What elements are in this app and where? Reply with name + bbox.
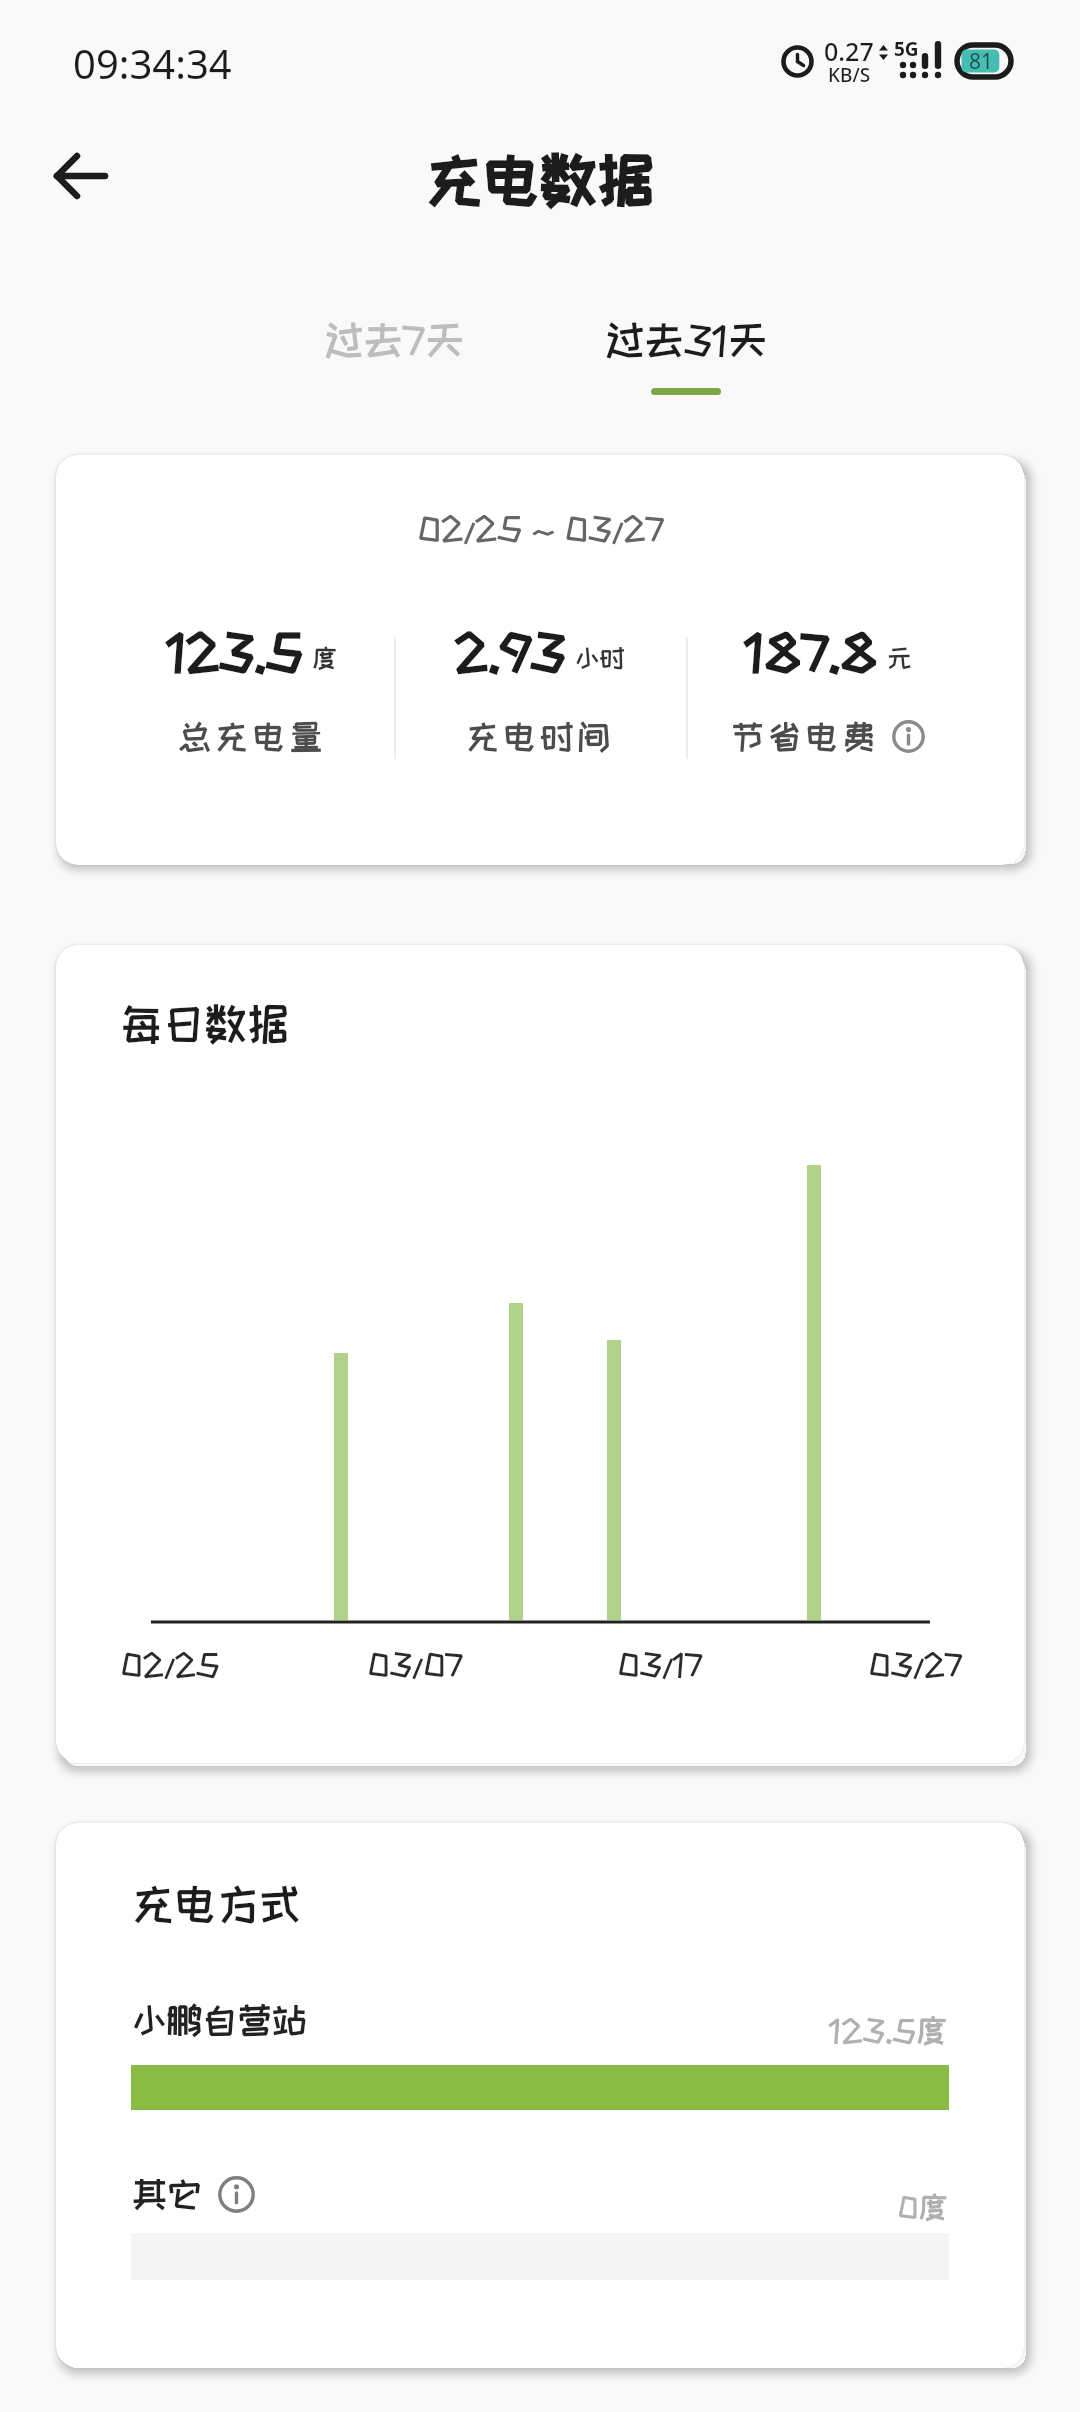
staticText: 其它	[132, 2175, 202, 2213]
staticText: 02/25	[120, 1647, 220, 1681]
staticText: 03/27	[868, 1647, 963, 1681]
staticText: 充电时间	[466, 718, 615, 754]
staticText: 总充电量	[178, 718, 327, 754]
staticText: 过去31天	[605, 318, 768, 361]
staticText: 0.27	[824, 34, 874, 68]
staticText: 0度	[897, 2191, 948, 2223]
staticText: 02/25 ~ 03/27	[417, 510, 664, 546]
staticText: 03/07	[367, 1647, 463, 1681]
button[interactable]	[892, 720, 925, 753]
button[interactable]: 过去31天	[540, 310, 832, 420]
staticText: 元	[887, 644, 912, 671]
staticText: 5G	[894, 36, 919, 62]
staticText: 03/17	[617, 1647, 703, 1681]
staticText: 123.5	[167, 625, 303, 678]
staticText: 187.8	[745, 625, 878, 678]
button[interactable]	[218, 2176, 255, 2213]
staticText: 充电数据	[426, 148, 655, 210]
staticText: 123.5度	[829, 2013, 948, 2047]
staticText: 81	[969, 47, 994, 76]
staticText: 节省电费	[731, 718, 880, 754]
staticText: 过去7天	[324, 318, 465, 361]
staticText: 2.93	[455, 625, 566, 678]
staticText: 充电方式	[132, 1881, 302, 1927]
staticText: 度	[312, 644, 337, 671]
staticText: 小鹏自营站	[132, 2001, 307, 2039]
staticText: 每日数据	[120, 1001, 290, 1047]
button[interactable]: 过去7天	[248, 310, 540, 420]
staticText: KB/S	[828, 62, 871, 88]
staticText: 小时	[575, 644, 625, 671]
staticText: 09:34:34	[73, 36, 232, 90]
button[interactable]	[36, 136, 126, 216]
